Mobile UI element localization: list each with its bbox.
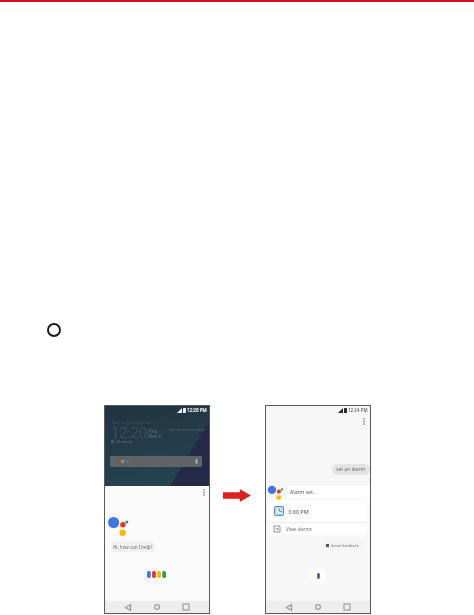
staticText: l <box>129 458 131 465</box>
staticText: View alarms <box>286 526 312 532</box>
button[interactable]: Home <box>312 601 324 613</box>
staticText: Your day at a glance <box>112 420 150 425</box>
staticText: set an alarm <box>336 466 366 473</box>
staticText: Send feedback <box>331 543 359 548</box>
button[interactable]: G <box>110 456 202 467</box>
button[interactable]: 3:00 PM <box>268 500 367 522</box>
staticText: 3:00 PM <box>288 508 309 515</box>
staticText: e <box>131 458 134 465</box>
button[interactable]: Recents <box>180 601 192 613</box>
button[interactable]: Back <box>283 601 295 613</box>
staticText: Tap to add weather <box>169 427 206 432</box>
staticText: Thu, Nov 2 <box>148 428 161 439</box>
staticText: g <box>125 458 129 465</box>
staticText: No events <box>116 439 133 444</box>
staticText: G <box>113 458 117 465</box>
button[interactable]: More options <box>358 416 369 427</box>
staticText: 12:20 <box>111 422 147 442</box>
button[interactable]: Send feedback <box>322 540 363 550</box>
staticText: 12:20 PM <box>187 407 207 413</box>
staticText: o <box>117 458 121 465</box>
staticText: 12:24 PM <box>348 407 368 413</box>
button[interactable]: Home <box>151 601 163 613</box>
staticText: Hi, how can I help? <box>113 544 153 550</box>
staticText: Alarm set. <box>290 489 315 496</box>
button[interactable]: Back <box>122 601 134 613</box>
button[interactable]: More options <box>198 487 209 498</box>
button[interactable]: View alarms <box>268 523 367 535</box>
button[interactable]: Voice input <box>310 568 326 584</box>
button[interactable]: Recents <box>341 601 353 613</box>
staticText: o <box>121 458 125 465</box>
button[interactable]: set an alarm <box>332 464 370 475</box>
